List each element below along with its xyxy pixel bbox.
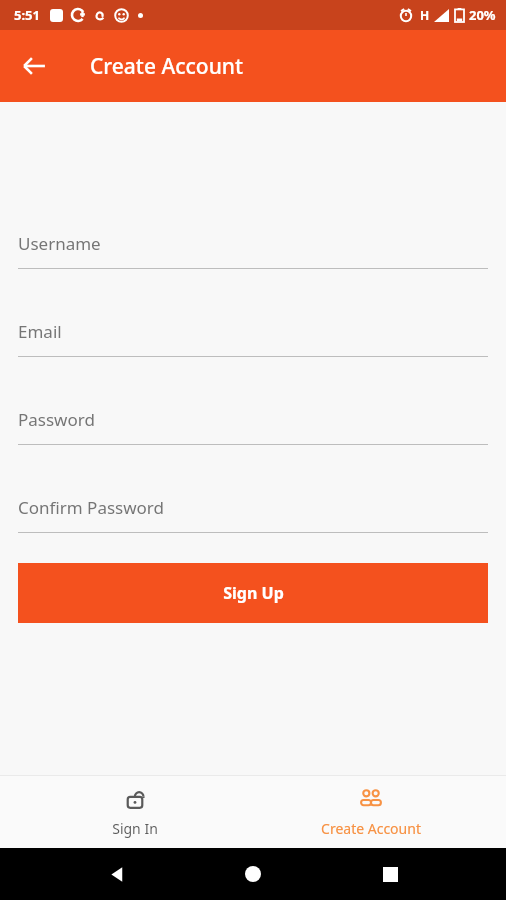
staticText: 5:51 bbox=[14, 6, 40, 24]
button[interactable]: Sign Up bbox=[18, 563, 488, 623]
staticText: 20% bbox=[469, 6, 496, 24]
button[interactable]: Sign In bbox=[35, 786, 235, 838]
button[interactable]: Home bbox=[233, 854, 273, 894]
button[interactable]: Confirm Password bbox=[18, 496, 488, 533]
staticText: H bbox=[420, 7, 430, 23]
button[interactable]: Create Account bbox=[271, 786, 471, 838]
staticText: Sign In bbox=[112, 819, 158, 838]
button[interactable]: Password bbox=[18, 408, 488, 445]
staticText: Username bbox=[18, 232, 101, 255]
button[interactable]: Back bbox=[10, 42, 58, 90]
button[interactable]: Back bbox=[97, 854, 137, 894]
button[interactable]: Recent apps bbox=[370, 854, 410, 894]
button[interactable]: Email bbox=[18, 320, 488, 357]
staticText: Email bbox=[18, 320, 62, 343]
button[interactable]: Username bbox=[18, 232, 488, 269]
staticText: Create Account bbox=[90, 52, 244, 81]
staticText: Create Account bbox=[321, 819, 421, 838]
staticText: Confirm Password bbox=[18, 496, 164, 519]
staticText: Password bbox=[18, 408, 95, 431]
staticText: Sign Up bbox=[223, 582, 284, 604]
